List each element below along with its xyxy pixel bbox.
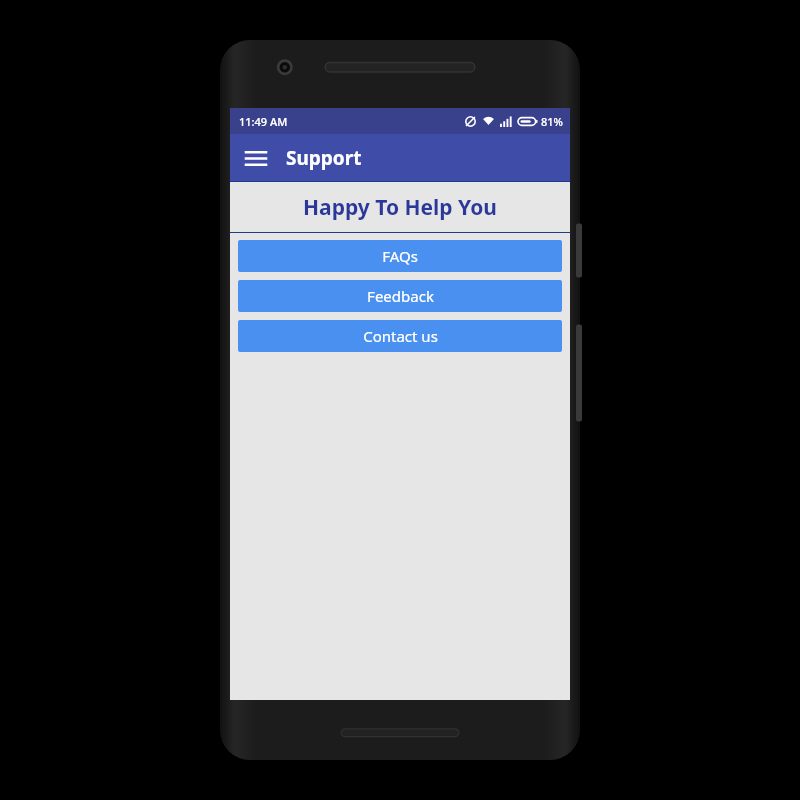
staticText: Contact us bbox=[363, 326, 438, 346]
staticText: 11:49 AM bbox=[239, 114, 288, 129]
staticText: Support bbox=[286, 145, 362, 171]
staticText: Happy To Help You bbox=[303, 193, 497, 222]
button[interactable]: Open navigation drawer bbox=[236, 138, 276, 178]
staticText: 81% bbox=[541, 114, 563, 129]
button[interactable]: FAQs bbox=[238, 240, 562, 272]
button[interactable]: Contact us bbox=[238, 320, 562, 352]
staticText: Feedback bbox=[367, 286, 434, 306]
button[interactable]: Feedback bbox=[238, 280, 562, 312]
staticText: FAQs bbox=[382, 246, 418, 266]
